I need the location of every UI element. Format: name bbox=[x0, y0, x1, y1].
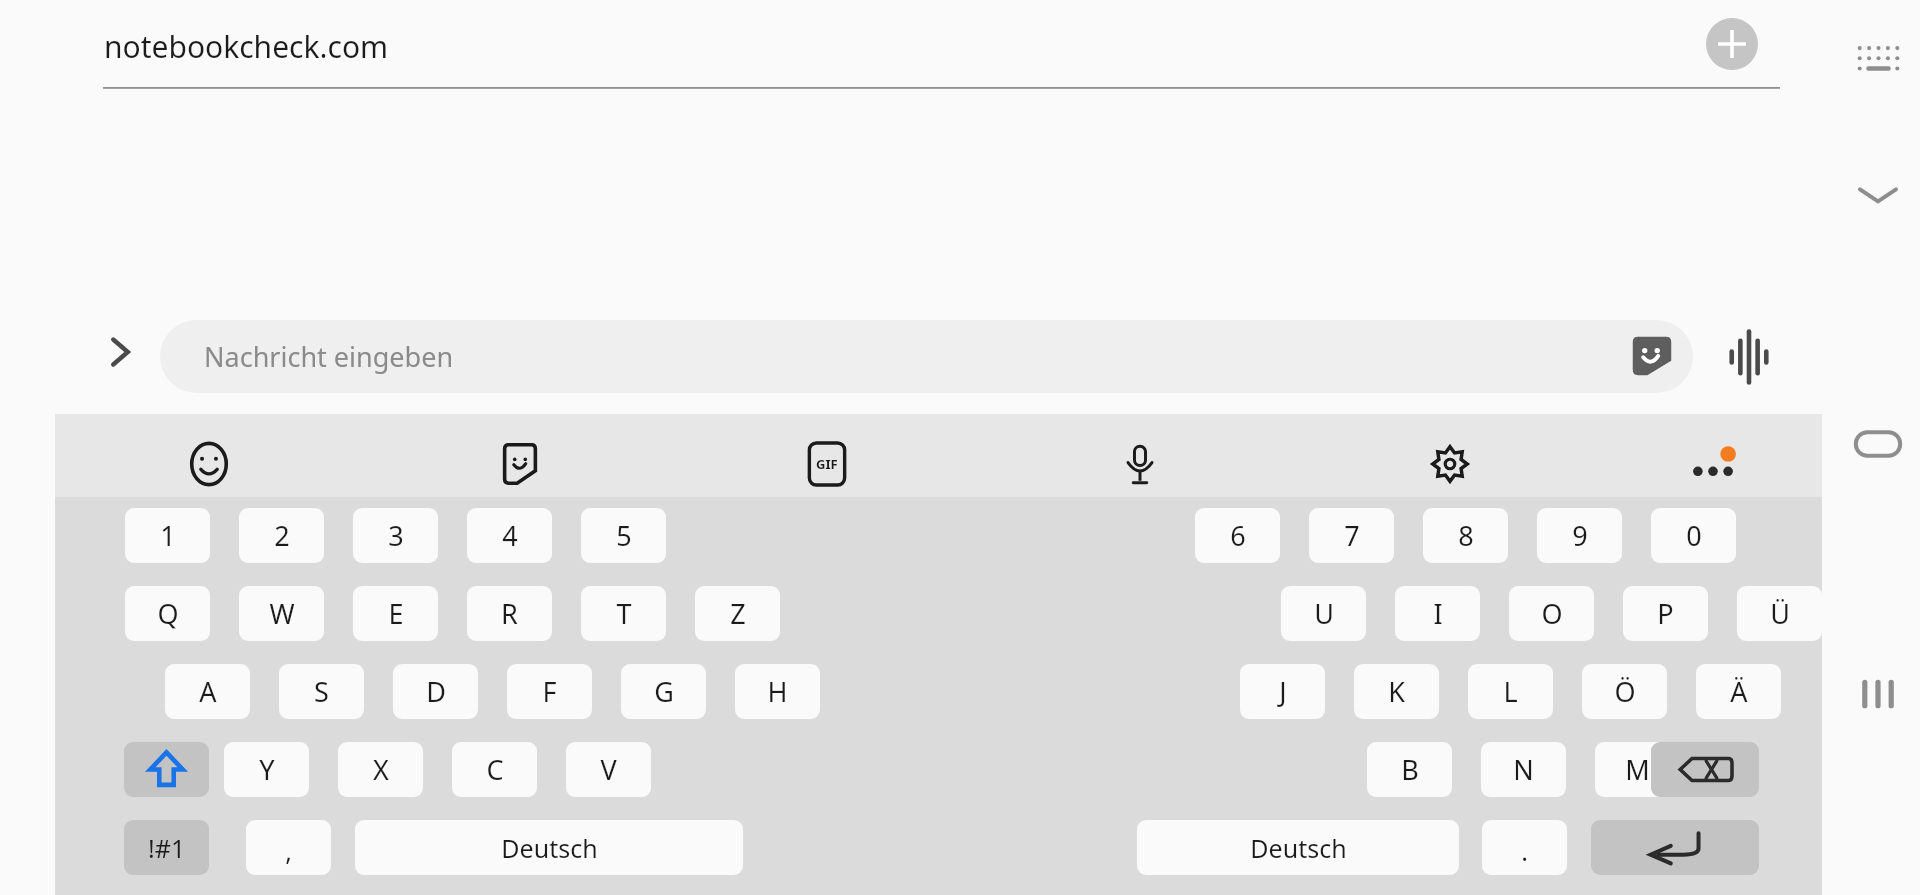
staticText: GIF bbox=[816, 455, 838, 473]
button[interactable]: 9 bbox=[1537, 508, 1622, 563]
button[interactable]: Z bbox=[695, 586, 780, 641]
staticText: Q bbox=[157, 595, 179, 632]
button[interactable]: C bbox=[452, 742, 537, 797]
staticText: M bbox=[1625, 751, 1650, 788]
button[interactable]: Ö bbox=[1582, 664, 1667, 719]
button[interactable]: Hide keyboard bbox=[1848, 175, 1908, 215]
button[interactable]: F bbox=[507, 664, 592, 719]
button[interactable]: L bbox=[1468, 664, 1553, 719]
staticText: W bbox=[269, 595, 295, 632]
button[interactable]: Recent apps bbox=[1848, 673, 1908, 715]
staticText: Nachricht eingeben bbox=[204, 338, 454, 375]
staticText: Ä bbox=[1730, 673, 1748, 710]
button[interactable]: I bbox=[1395, 586, 1480, 641]
staticText: . bbox=[1521, 834, 1528, 868]
staticText: !#1 bbox=[148, 831, 186, 865]
button[interactable]: 7 bbox=[1309, 508, 1394, 563]
button[interactable]: D bbox=[393, 664, 478, 719]
button[interactable]: !#1 bbox=[124, 820, 209, 875]
button[interactable]: K bbox=[1354, 664, 1439, 719]
staticText: 8 bbox=[1458, 517, 1474, 554]
button[interactable]: Voice message bbox=[1722, 330, 1776, 384]
staticText: P bbox=[1657, 595, 1674, 632]
staticText: E bbox=[388, 595, 404, 632]
button[interactable]: 3 bbox=[353, 508, 438, 563]
button[interactable]: New tab bbox=[1706, 18, 1758, 70]
button[interactable]: Deutsch bbox=[1137, 820, 1459, 875]
staticText: B bbox=[1401, 751, 1419, 788]
staticText: 4 bbox=[502, 517, 518, 554]
staticText: Deutsch bbox=[501, 831, 598, 865]
button[interactable]: Y bbox=[224, 742, 309, 797]
staticText: V bbox=[600, 751, 617, 788]
staticText: 6 bbox=[1230, 517, 1246, 554]
button[interactable]: Emoji bbox=[185, 440, 233, 488]
staticText: A bbox=[199, 673, 217, 710]
button[interactable]: B bbox=[1367, 742, 1452, 797]
staticText: Ö bbox=[1614, 673, 1636, 710]
button[interactable]: O bbox=[1509, 586, 1594, 641]
staticText: G bbox=[654, 673, 674, 710]
button[interactable]: U bbox=[1281, 586, 1366, 641]
staticText: O bbox=[1541, 595, 1563, 632]
button[interactable]: E bbox=[353, 586, 438, 641]
button[interactable]: 4 bbox=[467, 508, 552, 563]
button[interactable]: S bbox=[279, 664, 364, 719]
button[interactable]: Show more actions bbox=[94, 326, 146, 378]
button[interactable]: R bbox=[467, 586, 552, 641]
staticText: H bbox=[767, 673, 788, 710]
button[interactable]: Ä bbox=[1696, 664, 1781, 719]
staticText: 3 bbox=[388, 517, 404, 554]
staticText: J bbox=[1279, 673, 1287, 710]
staticText: Y bbox=[259, 751, 275, 788]
button[interactable]: N bbox=[1481, 742, 1566, 797]
button[interactable]: A bbox=[165, 664, 250, 719]
staticText: S bbox=[314, 673, 329, 710]
staticText: X bbox=[373, 751, 389, 788]
button[interactable]: 5 bbox=[581, 508, 666, 563]
button[interactable]: Deutsch bbox=[355, 820, 743, 875]
button[interactable]: Voice typing bbox=[1116, 440, 1164, 488]
button[interactable]: Keyboard settings bbox=[1426, 440, 1474, 488]
staticText: , bbox=[285, 834, 292, 868]
staticText: L bbox=[1503, 673, 1518, 710]
button[interactable]: 6 bbox=[1195, 508, 1280, 563]
staticText: Z bbox=[730, 595, 746, 632]
staticText: R bbox=[501, 595, 518, 632]
button[interactable]: Home bbox=[1848, 423, 1908, 465]
staticText: 9 bbox=[1572, 517, 1588, 554]
button[interactable]: X bbox=[338, 742, 423, 797]
button[interactable]: Ü bbox=[1737, 586, 1822, 641]
button[interactable]: P bbox=[1623, 586, 1708, 641]
staticText: D bbox=[426, 673, 446, 710]
button[interactable]: 0 bbox=[1651, 508, 1736, 563]
button[interactable]: V bbox=[566, 742, 651, 797]
button[interactable]: H bbox=[735, 664, 820, 719]
button[interactable]: Keyboard bbox=[1855, 42, 1902, 76]
button[interactable]: Sticker bbox=[1626, 330, 1678, 382]
staticText: 7 bbox=[1344, 517, 1360, 554]
button[interactable]: GIF bbox=[806, 443, 848, 485]
button[interactable]: G bbox=[621, 664, 706, 719]
button[interactable]: Q bbox=[125, 586, 210, 641]
staticText: 5 bbox=[616, 517, 632, 554]
button[interactable]: 8 bbox=[1423, 508, 1508, 563]
button[interactable]: More options bbox=[1686, 440, 1740, 494]
staticText: N bbox=[1513, 751, 1534, 788]
button[interactable]: Nachricht eingeben bbox=[160, 320, 1693, 393]
staticText: C bbox=[486, 751, 504, 788]
button[interactable]: Backspace bbox=[1651, 742, 1759, 797]
button[interactable]: Stickers bbox=[496, 440, 544, 488]
button[interactable]: 1 bbox=[125, 508, 210, 563]
button[interactable]: 2 bbox=[239, 508, 324, 563]
button[interactable]: T bbox=[581, 586, 666, 641]
staticText: I bbox=[1433, 595, 1443, 632]
button[interactable]: Enter bbox=[1591, 820, 1759, 875]
button[interactable]: M bbox=[1595, 742, 1680, 797]
button[interactable]: J bbox=[1240, 664, 1325, 719]
button[interactable]: , bbox=[246, 820, 331, 875]
button[interactable]: W bbox=[239, 586, 324, 641]
staticText: 2 bbox=[274, 517, 290, 554]
button[interactable]: Shift bbox=[124, 742, 209, 797]
button[interactable]: . bbox=[1482, 820, 1567, 875]
